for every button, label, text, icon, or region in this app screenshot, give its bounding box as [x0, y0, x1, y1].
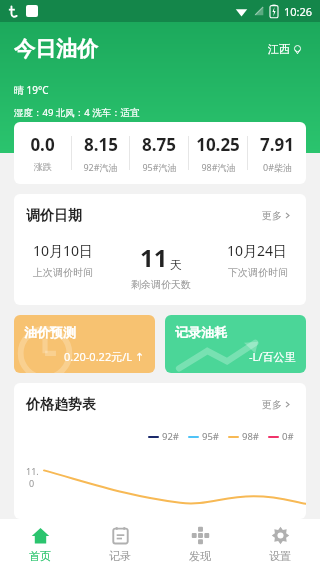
staticText: 湿度：49 北风：4 洗车：适宜: [14, 106, 140, 119]
staticText: 11.: [26, 465, 39, 477]
staticText: 下次调价时间: [228, 266, 288, 279]
staticText: 8.15: [84, 133, 118, 156]
staticText: 价格趋势表: [26, 396, 96, 414]
staticText: 95#: [202, 430, 220, 443]
button[interactable]: 记录: [80, 519, 160, 569]
button[interactable]: 更多: [259, 206, 294, 225]
staticText: 10:26: [284, 4, 313, 19]
staticText: 10月24日: [227, 241, 288, 260]
staticText: 发现: [189, 549, 211, 563]
button[interactable]: 更多: [259, 395, 294, 414]
staticText: 10.25: [196, 133, 240, 156]
staticText: 上次调价时间: [33, 266, 93, 279]
staticText: 今日油价: [14, 36, 98, 62]
staticText: 98#: [242, 430, 260, 443]
staticText: 首页: [29, 549, 51, 563]
staticText: 92#: [162, 430, 180, 443]
staticText: 涨跌: [34, 161, 52, 172]
staticText: 0: [29, 477, 35, 489]
button[interactable]: 首页: [0, 519, 80, 569]
staticText: 0.0: [30, 133, 55, 156]
staticText: 0#柴油: [263, 161, 292, 173]
staticText: 更多: [262, 398, 282, 411]
button[interactable]: 记录油耗: [165, 315, 306, 373]
staticText: 剩余调价天数: [131, 278, 191, 291]
staticText: 晴 19°C: [14, 83, 49, 97]
staticText: 调价日期: [26, 207, 82, 225]
staticText: 10月10日: [33, 241, 94, 260]
staticText: -L/百公里: [249, 349, 296, 364]
staticText: 7.91: [260, 133, 294, 156]
button[interactable]: 江西: [264, 38, 306, 60]
staticText: 0.20-0.22元/L ↑: [64, 349, 145, 364]
button[interactable]: 发现: [160, 519, 240, 569]
staticText: 98#汽油: [201, 161, 236, 173]
button[interactable]: 设置: [240, 519, 320, 569]
staticText: 11: [140, 241, 168, 274]
staticText: 天: [170, 257, 182, 272]
button[interactable]: 油价预测: [14, 315, 155, 373]
staticText: 92#汽油: [83, 161, 118, 173]
staticText: 记录油耗: [175, 324, 227, 340]
staticText: 0#: [282, 430, 294, 443]
staticText: 8.75: [142, 133, 176, 156]
staticText: 更多: [262, 209, 282, 222]
staticText: 95#汽油: [142, 161, 177, 173]
staticText: 记录: [109, 549, 131, 563]
staticText: 江西: [268, 42, 290, 56]
staticText: 油价预测: [24, 324, 76, 340]
staticText: 设置: [269, 549, 291, 563]
